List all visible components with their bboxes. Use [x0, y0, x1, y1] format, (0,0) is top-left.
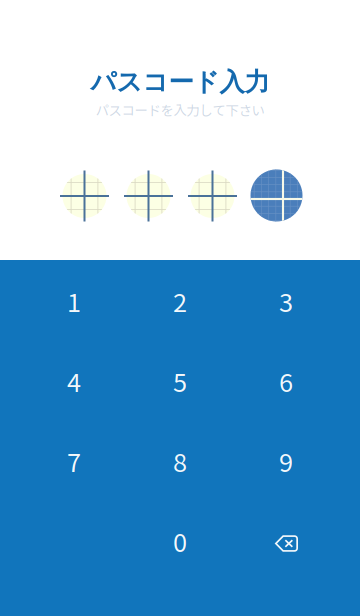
staticText: 5	[173, 363, 187, 399]
staticText: 8	[173, 443, 187, 479]
staticText: 1	[67, 283, 81, 319]
button[interactable]: 5	[127, 341, 233, 421]
button[interactable]: 6	[233, 341, 339, 421]
staticText: パスコード入力	[90, 66, 269, 98]
button[interactable]: 2	[127, 261, 233, 341]
button[interactable]: 0	[127, 501, 233, 581]
staticText: 3	[279, 283, 293, 319]
button[interactable]: 3	[233, 261, 339, 341]
button[interactable]: 1	[21, 261, 127, 341]
staticText: 0	[173, 523, 187, 559]
button[interactable]: 7	[21, 421, 127, 501]
staticText: 9	[279, 443, 293, 479]
staticText: パスコードを入力して下さい	[95, 100, 264, 119]
button[interactable]: 8	[127, 421, 233, 501]
staticText: 6	[279, 363, 293, 399]
button[interactable]: Delete	[233, 501, 339, 581]
staticText: 4	[67, 363, 81, 399]
staticText: 2	[173, 283, 187, 319]
button[interactable]: 9	[233, 421, 339, 501]
staticText: 7	[67, 443, 81, 479]
button[interactable]: 4	[21, 341, 127, 421]
